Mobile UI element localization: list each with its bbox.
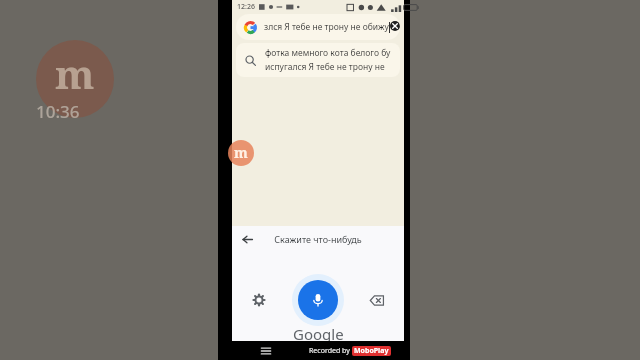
staticText: 12:26 (237, 2, 255, 12)
staticText: Recorded by (309, 346, 352, 356)
staticText: испугался Я тебе не трону не обижу (265, 61, 400, 73)
staticText: MoboPlay (354, 346, 389, 356)
button[interactable]: Delete (364, 287, 390, 313)
button[interactable]: злся Я тебе не трону не обижу (236, 14, 400, 40)
staticText: m (55, 46, 95, 100)
staticText: Скажите что-нибудь (274, 233, 362, 245)
button[interactable]: Settings (246, 287, 272, 313)
button[interactable]: Back (238, 230, 256, 248)
button[interactable]: Search suggestion (236, 43, 400, 77)
staticText: 10:36 (36, 100, 80, 123)
staticText: злся Я тебе не трону не обижу (264, 21, 389, 33)
staticText: фотка мемного кота белого бу (265, 47, 391, 59)
button[interactable]: Voice search (292, 274, 344, 326)
button[interactable]: Clear query (390, 17, 400, 37)
other: Search suggestion (245, 55, 256, 66)
staticText: m (234, 143, 248, 162)
button[interactable]: Menu (232, 341, 300, 360)
staticText: Google (293, 324, 344, 344)
